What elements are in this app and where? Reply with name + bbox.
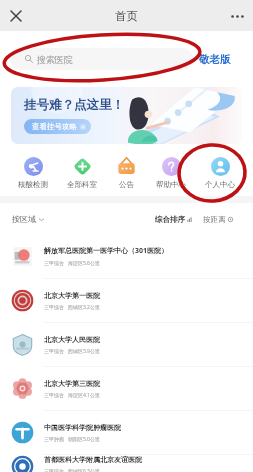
button[interactable]: 核酸检测 (16, 157, 50, 189)
staticText: 按区域 (12, 214, 36, 224)
staticText: 北京大学人民医院 (44, 335, 100, 344)
button[interactable]: 按距离 (203, 215, 233, 224)
button[interactable]: 挂号难？点这里！ (11, 87, 242, 144)
staticText: 首页 (115, 9, 138, 23)
staticText: 核酸检测 (18, 180, 48, 189)
button[interactable]: 解放军总医院第一医学中心（301医院） (0, 235, 253, 278)
button[interactable]: 搜索医院 (10, 48, 193, 70)
staticText: 三甲综合 海淀区4.1公里 (44, 392, 100, 399)
staticText: 按距离 (203, 215, 226, 224)
button[interactable]: Close (5, 5, 27, 27)
staticText: 北京大学第三医院 (44, 379, 100, 388)
staticText: 三甲肿瘤 朝阳区5.0公里 (44, 436, 100, 443)
button[interactable]: 敬老版 (198, 49, 232, 70)
staticText: 综合排序 (155, 215, 185, 224)
button[interactable]: 个人中心 (203, 157, 237, 189)
staticText: 北京大学第一医院 (44, 291, 100, 300)
staticText: 三甲综合 海淀区5.6公里 (44, 260, 100, 267)
button[interactable]: More options (226, 5, 248, 27)
button[interactable]: 公告 (115, 157, 138, 189)
button[interactable]: 查看挂号攻略 (24, 119, 91, 134)
staticText: 搜索医院 (37, 54, 73, 65)
button[interactable]: 帮助中心 (154, 157, 188, 189)
button[interactable]: 按区域 (12, 214, 44, 224)
staticText: 三甲综合 西城区3.2公里 (44, 304, 100, 311)
button[interactable]: 北京大学第一医院 (0, 279, 253, 322)
staticText: 首都医科大学附属北京友谊医院 (44, 455, 142, 464)
staticText: 全部科室 (67, 180, 97, 189)
staticText: 解放军总医院第一医学中心（301医院） (44, 246, 169, 256)
staticText: 帮助中心 (156, 180, 186, 189)
button[interactable]: 中国医学科学院肿瘤医院 (0, 411, 253, 454)
staticText: 中国医学科学院肿瘤医院 (44, 423, 121, 432)
button[interactable]: 北京大学第三医院 (0, 367, 253, 410)
staticText: 敬老版 (199, 53, 231, 66)
button[interactable]: 全部科室 (65, 157, 99, 189)
staticText: 公告 (119, 180, 134, 189)
staticText: 个人中心 (205, 180, 235, 189)
staticText: 挂号难？点这里！ (24, 97, 124, 113)
staticText: 三甲综合 西城区3.9公里 (44, 348, 100, 355)
staticText: 三甲综合 西城区6.3公里 (44, 468, 100, 472)
button[interactable]: 综合排序 (155, 215, 192, 224)
button[interactable]: 北京大学人民医院 (0, 323, 253, 366)
button[interactable]: 首都医科大学附属北京友谊医院 (0, 455, 253, 472)
staticText: 查看挂号攻略 (32, 122, 77, 131)
